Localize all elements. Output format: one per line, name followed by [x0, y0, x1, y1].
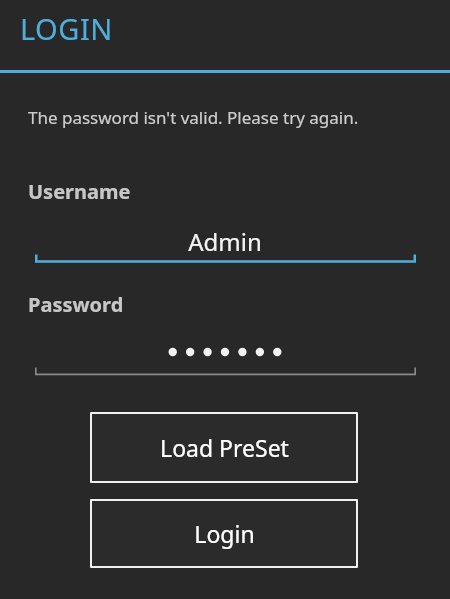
staticText: The password isn't valid. Please try aga… — [28, 106, 359, 129]
staticText: LOGIN — [20, 9, 113, 48]
button[interactable]: Load PreSet — [90, 412, 358, 483]
staticText: Password — [28, 291, 124, 318]
staticText: Username — [28, 178, 131, 205]
button[interactable]: Login — [90, 499, 358, 568]
button[interactable] — [35, 334, 415, 370]
staticText: Login — [194, 518, 255, 549]
button[interactable]: Admin — [35, 222, 415, 260]
staticText: Load PreSet — [160, 432, 289, 463]
staticText: Admin — [188, 225, 262, 258]
